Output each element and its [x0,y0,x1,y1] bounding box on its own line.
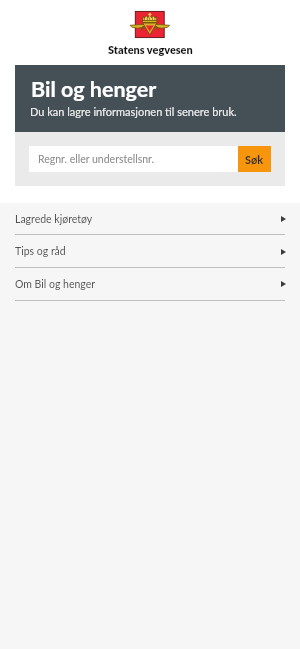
other: Åpne [281,249,286,255]
button[interactable]: Regnr. eller understellsnr. [29,146,238,172]
button[interactable]: Om Bil og henger [0,268,300,301]
staticText: Bil og henger [31,76,157,102]
other: Åpne [281,281,286,287]
button[interactable]: Tips og råd [0,236,300,268]
button[interactable]: Lagrede kjøretøy [0,204,300,235]
staticText: Lagrede kjøretøy [15,213,93,226]
staticText: Du kan lagre informasjonen til senere br… [30,105,237,118]
button[interactable]: Søk [238,146,271,172]
staticText: Søk [245,153,264,166]
staticText: Statens vegvesen [108,43,193,56]
staticText: Tips og råd [15,245,66,258]
staticText: Regnr. eller understellsnr. [38,153,155,166]
other: Åpne [281,216,286,222]
staticText: Om Bil og henger [15,278,96,291]
